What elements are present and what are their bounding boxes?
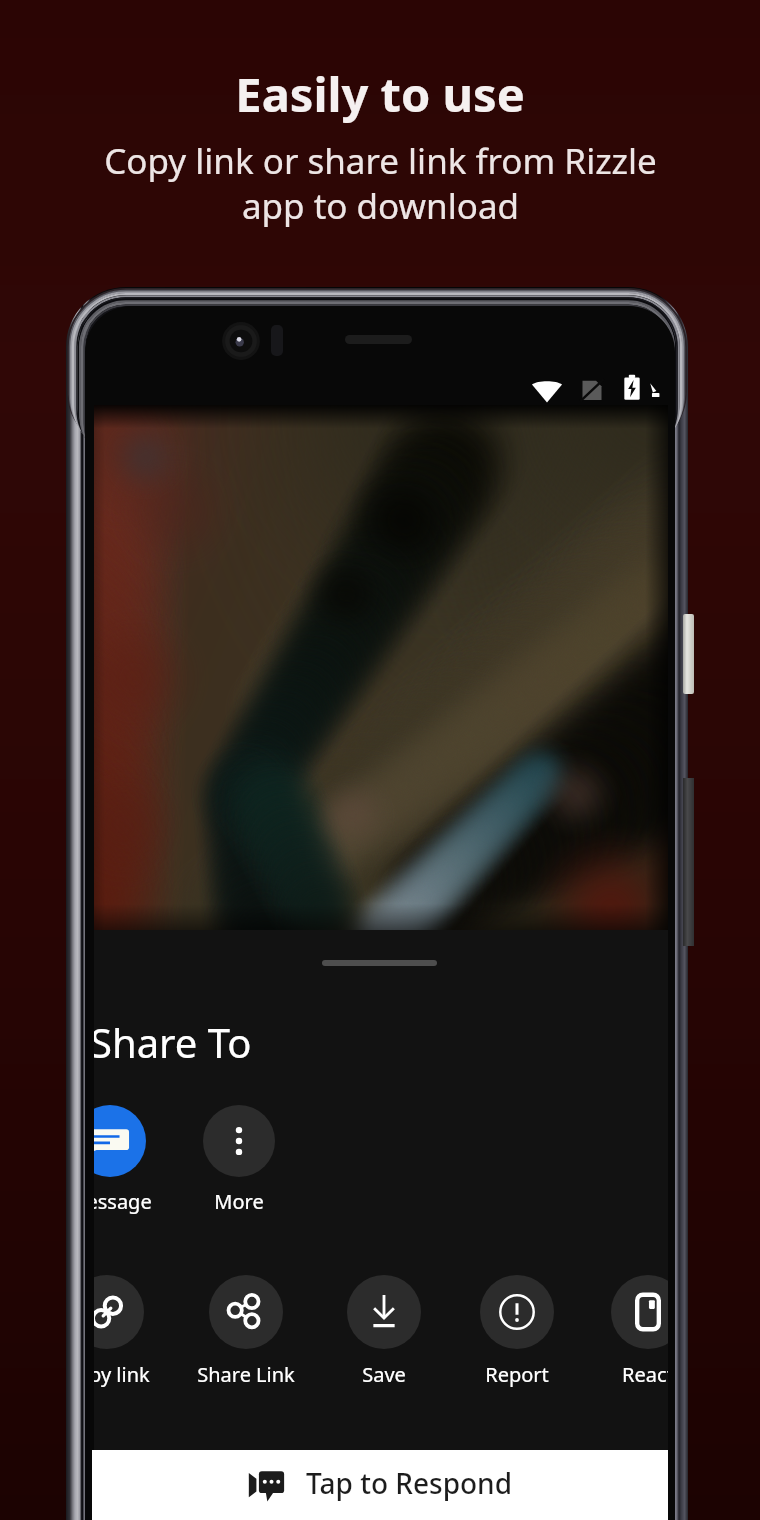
staticText: Copy link — [94, 1361, 150, 1388]
button[interactable]: More — [139, 1105, 339, 1215]
staticText: Tap to Respond — [306, 1464, 513, 1502]
staticText: Message — [94, 1188, 152, 1215]
button[interactable]: Message — [94, 1105, 210, 1215]
button[interactable]: Tap to Respond — [92, 1450, 668, 1520]
staticText: Save — [362, 1361, 406, 1388]
staticText: Copy link or share link from Rizzle app … — [104, 137, 657, 230]
staticText: Report — [485, 1361, 549, 1388]
button[interactable]: React — [548, 1275, 668, 1388]
button[interactable]: Share Link — [146, 1275, 346, 1388]
staticText: Share To — [94, 1015, 252, 1069]
button[interactable]: Report — [417, 1275, 617, 1388]
staticText: React — [622, 1361, 668, 1388]
staticText: Easily to use — [235, 62, 525, 126]
staticText: Share Link — [197, 1361, 295, 1388]
staticText: More — [214, 1188, 264, 1215]
button[interactable]: Save — [284, 1275, 484, 1388]
button[interactable]: Copy link — [94, 1275, 207, 1388]
